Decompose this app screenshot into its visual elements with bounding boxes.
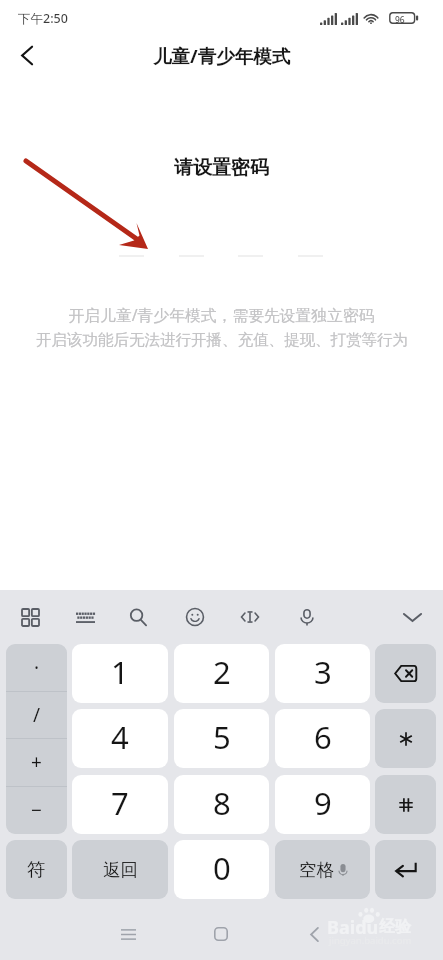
- staticText: 空格: [299, 859, 334, 881]
- button[interactable]: Search: [119, 598, 157, 636]
- button[interactable]: Emoji: [176, 598, 214, 636]
- staticText: 开启该功能后无法进行开播、充值、提现、打赏等行为: [36, 330, 408, 350]
- button[interactable]: 4: [72, 709, 168, 768]
- staticText: 3: [314, 651, 332, 693]
- button[interactable]: Backspace: [375, 644, 436, 703]
- staticText: 6: [314, 716, 332, 758]
- staticText: 经验: [379, 917, 411, 937]
- staticText: 下午2:50: [18, 10, 68, 27]
- staticText: ·: [34, 655, 40, 681]
- button[interactable]: Back: [8, 36, 46, 74]
- button[interactable]: 符: [6, 840, 67, 899]
- button[interactable]: Recents: [106, 912, 150, 956]
- staticText: 0: [213, 847, 231, 889]
- button[interactable]: 2: [174, 644, 269, 703]
- button[interactable]: Asterisk: [375, 709, 436, 768]
- button[interactable]: Back: [292, 912, 336, 956]
- staticText: 5: [213, 716, 231, 758]
- button[interactable]: Home: [199, 912, 243, 956]
- button[interactable]: 空格: [275, 840, 370, 899]
- button[interactable]: Keyboard: [66, 598, 104, 636]
- button[interactable]: Enter: [375, 840, 436, 899]
- button[interactable]: 8: [174, 775, 269, 834]
- staticText: 1: [111, 651, 129, 693]
- staticText: 9: [314, 782, 332, 824]
- button[interactable]: 7: [72, 775, 168, 834]
- button[interactable]: 返回: [72, 840, 168, 899]
- staticText: 96: [395, 14, 405, 26]
- button[interactable]: 5: [174, 709, 269, 768]
- staticText: 返回: [103, 859, 138, 881]
- staticText: 儿童/青少年模式: [153, 43, 291, 68]
- staticText: 2: [213, 651, 231, 693]
- staticText: 请设置密码: [174, 156, 269, 180]
- staticText: 7: [111, 782, 129, 824]
- button[interactable]: Keyboard layouts: [11, 598, 49, 636]
- button[interactable]: ·: [6, 644, 67, 691]
- button[interactable]: 0: [174, 840, 269, 899]
- button[interactable]: 6: [275, 709, 370, 768]
- staticText: 符: [27, 858, 46, 881]
- button[interactable]: Voice input: [288, 598, 326, 636]
- staticText: 4: [111, 716, 129, 758]
- staticText: −: [31, 797, 42, 823]
- button[interactable]: Hide keyboard: [393, 598, 431, 636]
- staticText: +: [31, 749, 42, 775]
- staticText: 开启儿童/青少年模式，需要先设置独立密码: [68, 304, 375, 326]
- button[interactable]: −: [6, 786, 67, 834]
- button[interactable]: 1: [72, 644, 168, 703]
- button[interactable]: Clipboard: [231, 598, 269, 636]
- staticText: /: [33, 702, 41, 728]
- button[interactable]: 3: [275, 644, 370, 703]
- button[interactable]: /: [6, 691, 67, 738]
- staticText: Baidu: [327, 915, 379, 940]
- button[interactable]: 9: [275, 775, 370, 834]
- button[interactable]: +: [6, 738, 67, 786]
- button[interactable]: Hash: [375, 775, 436, 834]
- staticText: 8: [213, 782, 231, 824]
